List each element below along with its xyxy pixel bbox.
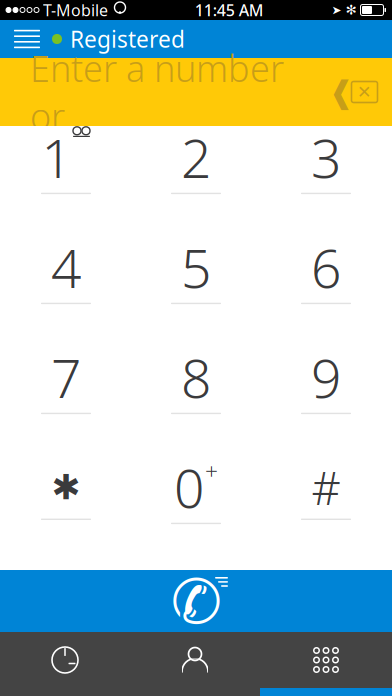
button[interactable]: 2 [131, 126, 261, 236]
button[interactable]: ✱ [1, 456, 131, 566]
staticText: 9 [311, 342, 341, 413]
staticText: ✕ [357, 82, 372, 102]
staticText: 7 [51, 342, 81, 413]
button[interactable]: 6 [261, 236, 391, 346]
staticText: 1 [41, 122, 71, 193]
staticText: ✱ [51, 468, 80, 507]
button[interactable]: Registered [42, 16, 185, 62]
staticText: 0 [174, 452, 204, 523]
button[interactable]: 7 [1, 346, 131, 456]
staticText: Registered [70, 24, 185, 54]
button[interactable]: Keypad [260, 632, 392, 688]
staticText: Enter a number or... [30, 44, 284, 140]
button[interactable]: Contacts [130, 632, 260, 688]
staticText: T-Mobile [43, 0, 108, 21]
staticText: + [205, 456, 218, 486]
staticText: 8 [181, 342, 211, 413]
button[interactable]: 9 [261, 346, 391, 456]
staticText: 11:45 AM [195, 0, 264, 21]
staticText: 4 [51, 232, 81, 303]
staticText: 3 [311, 122, 341, 193]
button[interactable]: Recents [0, 632, 130, 688]
staticText: ✻ [345, 2, 356, 17]
button[interactable]: Delete [326, 72, 380, 112]
button[interactable]: 3 [261, 126, 391, 236]
staticText: ❰ [328, 75, 354, 109]
button[interactable]: 0 [131, 456, 261, 566]
button[interactable]: Call [0, 570, 392, 632]
button[interactable]: Menu [12, 20, 42, 58]
staticText: 5 [181, 232, 211, 303]
button[interactable]: 5 [131, 236, 261, 346]
staticText: ➤ [331, 3, 341, 17]
button[interactable]: 1 [1, 126, 131, 236]
button[interactable]: 4 [1, 236, 131, 346]
staticText: 2 [181, 122, 211, 193]
staticText: # [311, 457, 340, 517]
staticText: 6 [311, 232, 341, 303]
staticText: ✆ [170, 567, 221, 637]
button[interactable]: # [261, 456, 391, 566]
button[interactable]: 8 [131, 346, 261, 456]
